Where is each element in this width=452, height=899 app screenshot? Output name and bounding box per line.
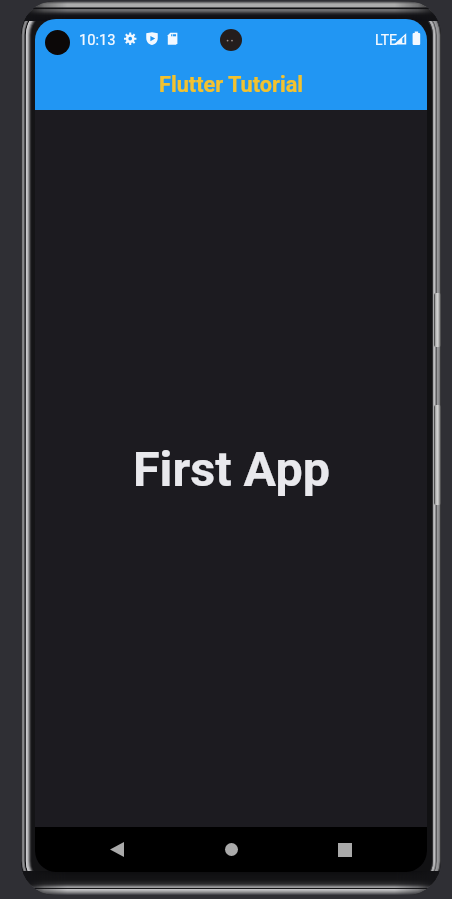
button[interactable]: Home [207, 827, 255, 872]
staticText: Flutter Tutorial [159, 72, 304, 97]
staticText: LTE [375, 32, 397, 48]
staticText: First App [133, 441, 330, 498]
button[interactable]: Recent apps [321, 827, 369, 872]
staticText: 10:13 [79, 31, 116, 48]
button[interactable]: Back [93, 827, 141, 872]
